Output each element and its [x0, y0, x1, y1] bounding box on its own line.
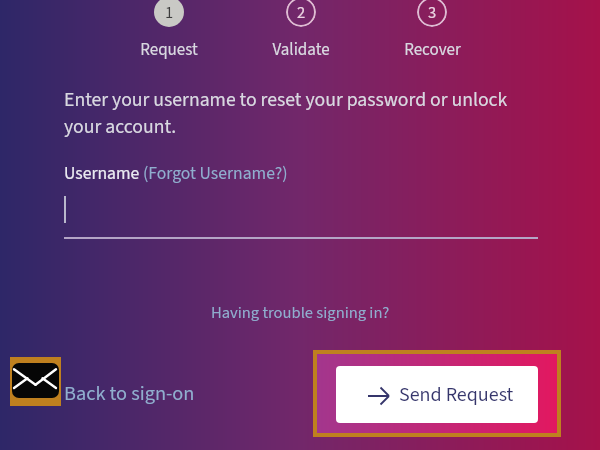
- button[interactable]: 2: [251, 0, 351, 62]
- staticText: Recover: [404, 38, 461, 62]
- button[interactable]: 1: [119, 0, 219, 62]
- button[interactable]: (Forgot Username?): [143, 161, 288, 186]
- staticText: (Forgot Username?): [143, 161, 288, 186]
- staticText: 3: [428, 1, 437, 24]
- staticText: Validate: [272, 38, 330, 62]
- staticText: Request: [140, 38, 198, 62]
- staticText: Username: [64, 161, 143, 186]
- staticText: Enter your username to reset your passwo…: [64, 86, 524, 141]
- button[interactable]: Email: [10, 357, 61, 406]
- staticText: Send Request: [399, 381, 514, 409]
- button[interactable]: 3: [382, 0, 482, 62]
- button[interactable]: Username input field: [64, 195, 538, 239]
- button[interactable]: Send Request: [317, 354, 557, 433]
- staticText: Having trouble signing in?: [211, 301, 390, 324]
- button[interactable]: Having trouble signing in?: [211, 301, 390, 324]
- staticText: Back to sign-on: [64, 379, 195, 408]
- staticText: 2: [297, 1, 306, 24]
- button[interactable]: Back to sign-on: [64, 379, 195, 408]
- staticText: 1: [165, 1, 174, 24]
